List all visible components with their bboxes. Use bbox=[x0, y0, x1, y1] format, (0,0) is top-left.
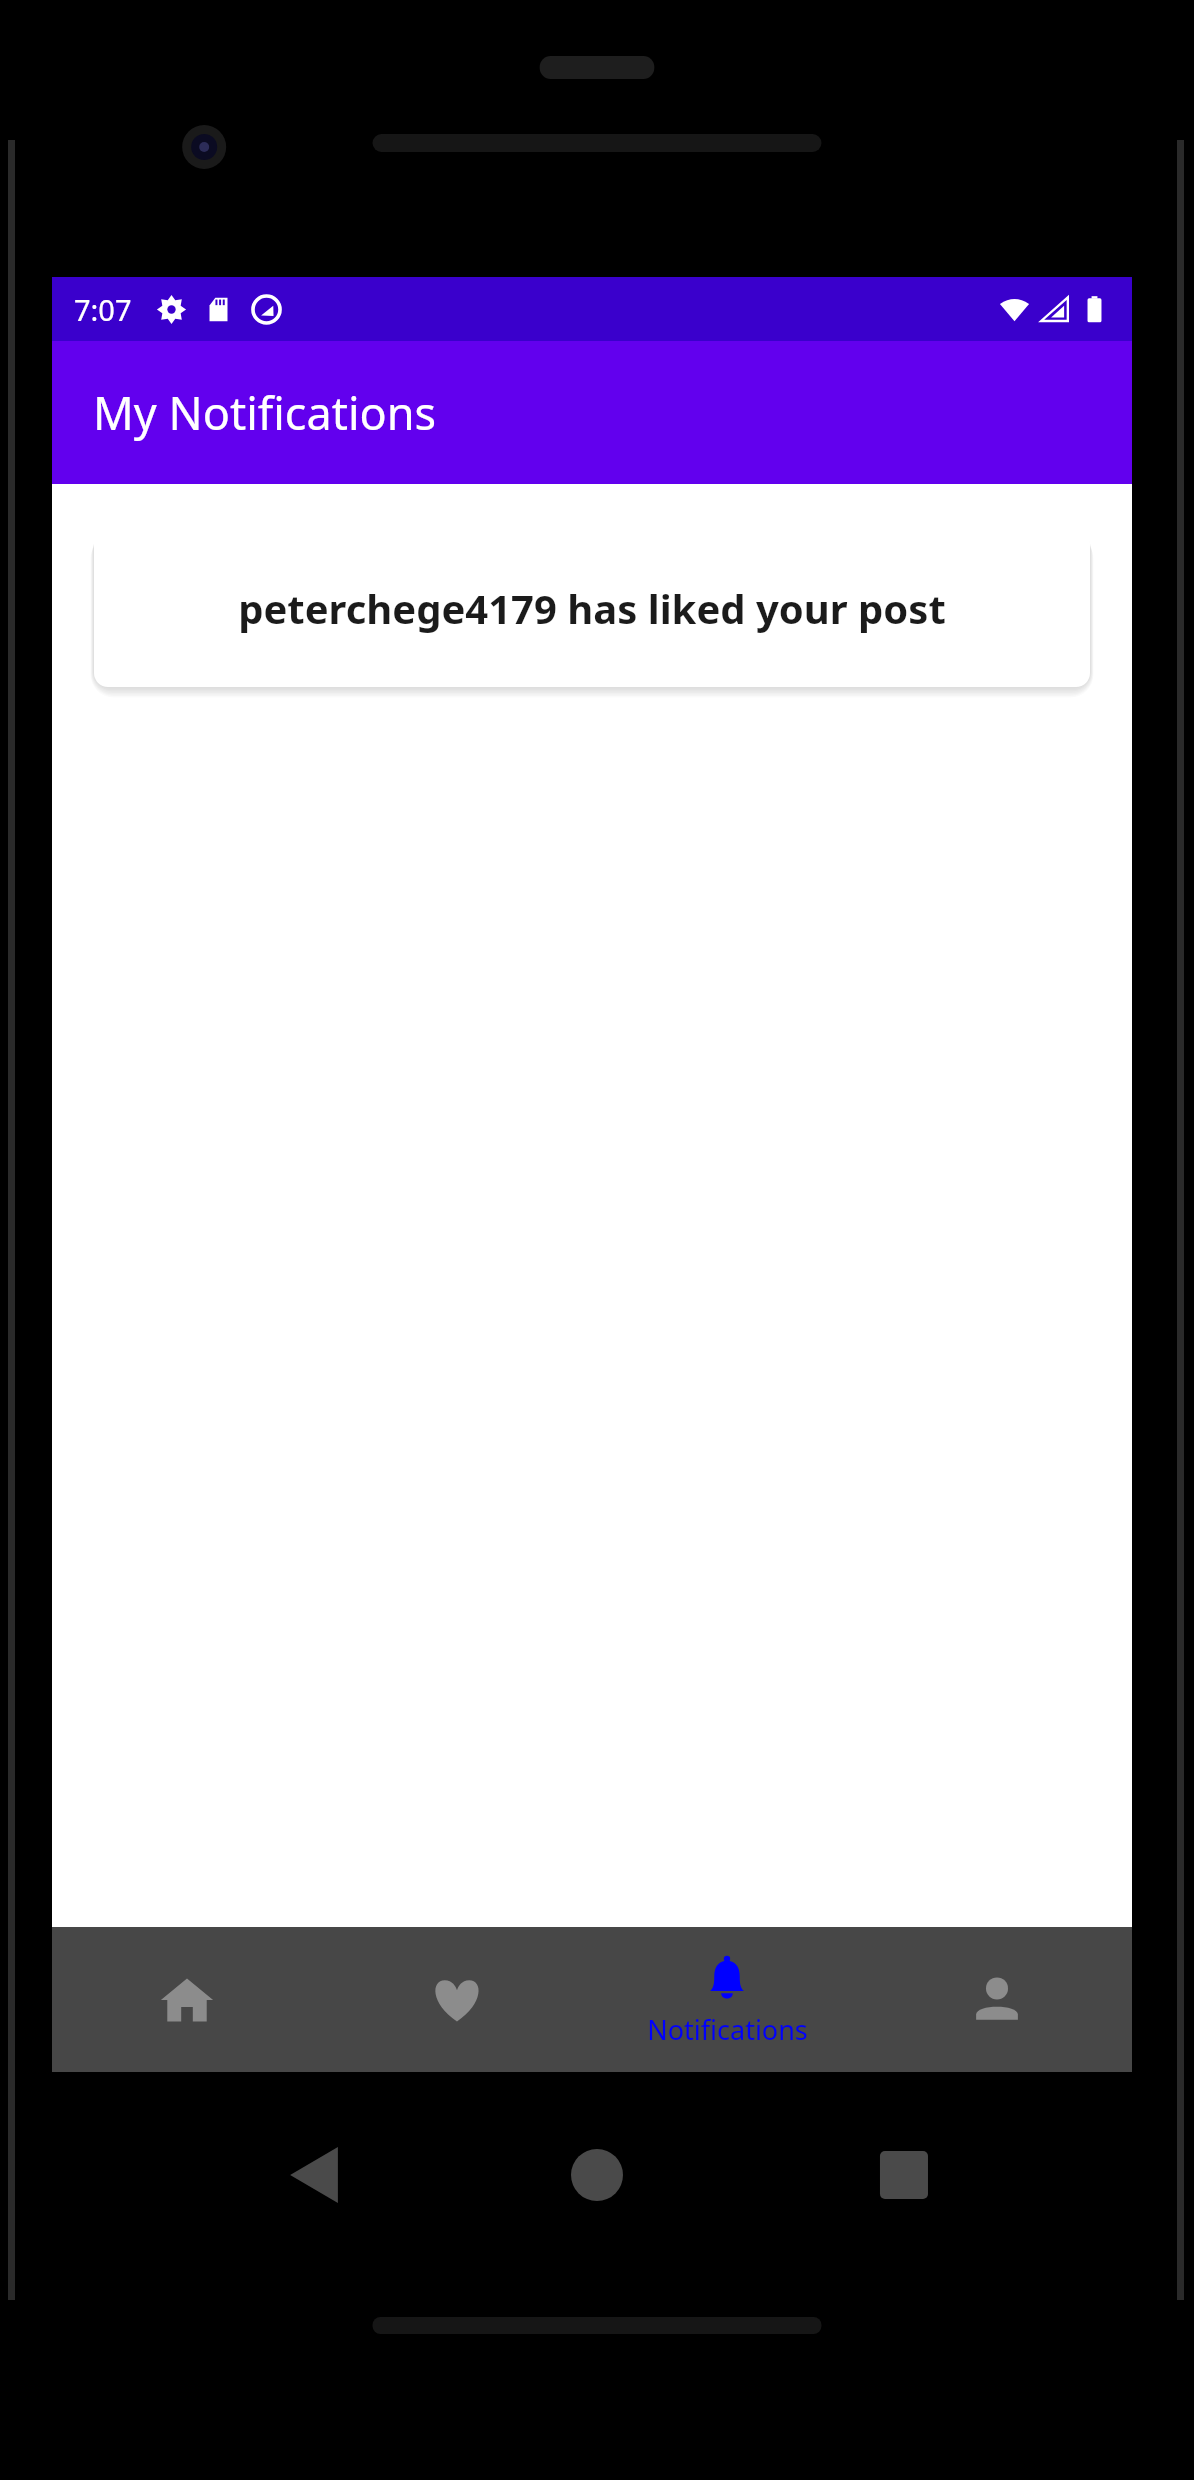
staticText: Notifications bbox=[647, 2011, 808, 2048]
button[interactable]: Likes bbox=[322, 1927, 592, 2072]
staticText: peterchege4179 has liked your post bbox=[238, 581, 946, 635]
staticText: 7:07 bbox=[74, 290, 132, 329]
button[interactable]: Home bbox=[52, 1927, 322, 2072]
button[interactable]: Profile bbox=[862, 1927, 1132, 2072]
staticText: My Notifications bbox=[93, 382, 437, 443]
button[interactable]: Notifications bbox=[592, 1927, 862, 2072]
button[interactable]: peterchege4179 has liked your post bbox=[94, 529, 1090, 687]
